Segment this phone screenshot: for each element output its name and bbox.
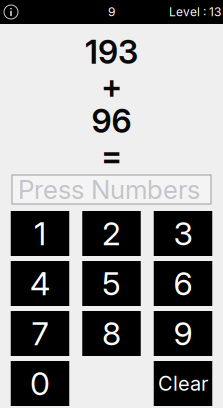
button[interactable]: Clear [154,361,212,406]
button[interactable]: Info [0,0,22,24]
staticText: 9 [108,5,115,19]
button[interactable]: 4 [11,261,69,306]
staticText: Clear [158,371,208,396]
button[interactable]: 9 [154,311,212,356]
staticText: = [101,136,122,175]
button[interactable]: 2 [82,211,141,256]
staticText: 1 [34,214,46,253]
staticText: 193 [85,32,138,72]
staticText: 9 [173,314,192,353]
staticText: 96 [91,101,131,141]
staticText: 5 [102,264,121,303]
staticText: 2 [102,214,121,253]
button[interactable]: 0 [11,361,69,406]
button[interactable]: 5 [82,261,141,306]
button[interactable]: 3 [154,211,212,256]
staticText: Press Numbers [18,174,200,205]
staticText: 6 [173,264,192,303]
staticText: 4 [30,264,50,303]
button[interactable]: 6 [154,261,212,306]
staticText: 7 [31,314,48,353]
staticText: 0 [30,364,50,403]
staticText: Level : 13 [169,5,221,19]
button[interactable]: 7 [11,311,69,356]
staticText: 8 [102,314,121,353]
button[interactable]: 8 [82,311,141,356]
staticText: 3 [173,214,192,253]
staticText: + [101,67,122,106]
button[interactable]: 1 [11,211,69,256]
